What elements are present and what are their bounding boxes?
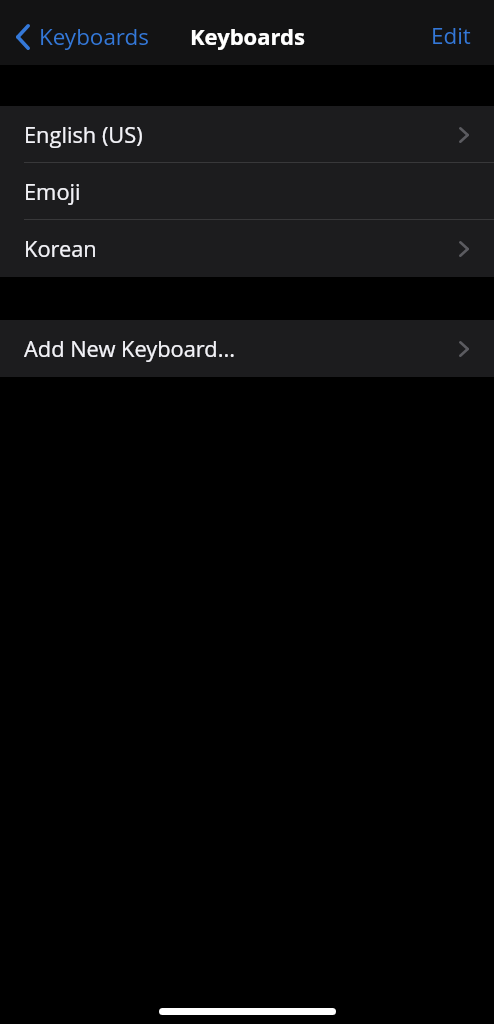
staticText: Edit	[431, 20, 471, 51]
button[interactable]: English (US)	[0, 106, 494, 163]
staticText: Add New Keyboard...	[24, 334, 236, 364]
button[interactable]: Emoji	[0, 163, 494, 220]
staticText: Emoji	[24, 177, 81, 207]
staticText: Korean	[24, 234, 97, 264]
staticText: English (US)	[24, 120, 143, 150]
other: Open Korean	[459, 241, 469, 257]
staticText: Keyboards	[39, 21, 149, 52]
staticText: Keyboards	[190, 21, 305, 51]
button[interactable]: Edit	[407, 6, 494, 59]
button[interactable]: Add New Keyboard...	[0, 320, 494, 377]
other: Open English (US)	[459, 127, 469, 143]
other: Open Add New Keyboard...	[459, 341, 469, 357]
button[interactable]: Back to Keyboards	[0, 8, 159, 58]
button[interactable]: Korean	[0, 220, 494, 277]
